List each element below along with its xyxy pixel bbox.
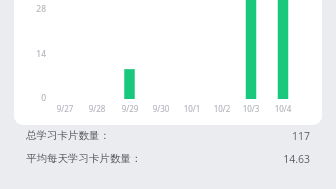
staticText: 10/1 — [179, 103, 205, 114]
staticText: 9/29 — [117, 103, 143, 114]
staticText: 0 — [16, 92, 46, 104]
staticText: 9/30 — [148, 103, 174, 114]
staticText: 10/3 — [238, 103, 264, 114]
staticText: 10/4 — [270, 103, 296, 114]
staticText: 14.63 — [26, 152, 310, 166]
button[interactable]: 平均每天学习卡片数量： — [26, 152, 310, 168]
staticText: 117 — [26, 129, 310, 143]
staticText: 10/2 — [209, 103, 235, 114]
staticText: 14 — [16, 48, 46, 60]
staticText: 9/28 — [84, 103, 110, 114]
button[interactable]: 总学习卡片数量： — [26, 129, 310, 145]
staticText: 总学习卡片数量： — [26, 129, 110, 142]
button[interactable] — [14, 0, 322, 125]
staticText: 9/27 — [52, 103, 78, 114]
staticText: 28 — [16, 3, 46, 15]
staticText: 平均每天学习卡片数量： — [26, 152, 142, 165]
